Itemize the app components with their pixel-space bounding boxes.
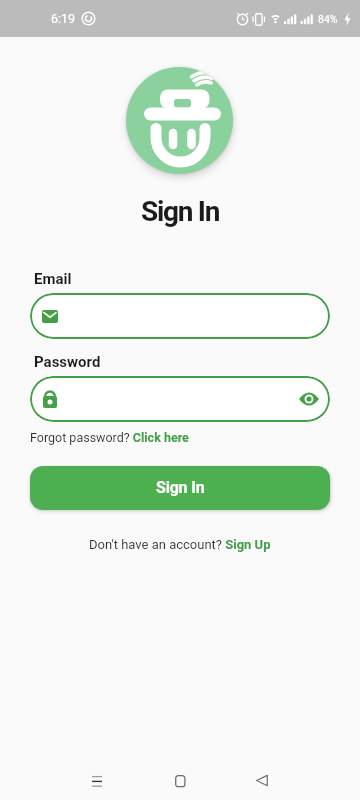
- button[interactable]: Don't have an account? Sign Up: [89, 537, 271, 552]
- button[interactable]: [165, 766, 195, 796]
- button[interactable]: [293, 385, 325, 413]
- button[interactable]: [82, 766, 112, 796]
- button[interactable]: [247, 766, 277, 796]
- staticText: Password: [34, 353, 101, 371]
- staticText: Email: [34, 270, 72, 288]
- button[interactable]: Forgot password? Click here: [30, 430, 189, 445]
- button[interactable]: [30, 293, 330, 339]
- staticText: Sign In: [156, 478, 205, 497]
- staticText: 6:19: [51, 11, 76, 26]
- staticText: Sign In: [141, 195, 220, 228]
- staticText: 84%: [318, 13, 338, 25]
- button[interactable]: [30, 376, 330, 422]
- button[interactable]: Sign In: [30, 466, 330, 510]
